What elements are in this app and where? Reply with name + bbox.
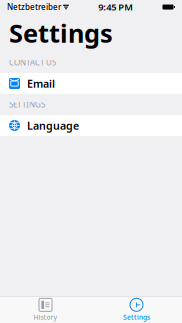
staticText: 9:45 PM xyxy=(98,1,133,13)
button[interactable]: Settings xyxy=(91,297,182,323)
staticText: History xyxy=(33,313,57,322)
staticText: Language xyxy=(27,118,79,133)
staticText: Settings xyxy=(9,16,113,50)
staticText: Settings xyxy=(123,313,150,322)
staticText: Netzbetreiber xyxy=(7,2,61,12)
button[interactable]: Language xyxy=(0,115,182,136)
staticText: Email xyxy=(27,76,55,91)
staticText: SETTINGS xyxy=(9,99,45,110)
button[interactable]: History xyxy=(0,297,91,323)
staticText: CONTACT US xyxy=(9,57,56,68)
button[interactable]: Email xyxy=(0,73,182,94)
